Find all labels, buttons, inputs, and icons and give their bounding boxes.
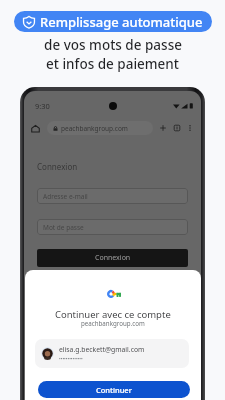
button[interactable]: New tab bbox=[159, 124, 167, 132]
staticText: Connexion bbox=[95, 253, 131, 263]
button[interactable]: Adresse e-mail bbox=[37, 188, 188, 204]
staticText: peachbankgroup.com bbox=[81, 319, 145, 327]
staticText: Continuer bbox=[96, 385, 132, 395]
other: Shield bbox=[22, 15, 36, 29]
button[interactable]: Connexion bbox=[37, 249, 188, 267]
staticText: 9:30 bbox=[35, 101, 50, 111]
staticText: de vos mots de passe bbox=[44, 36, 182, 54]
button[interactable]: Continuer bbox=[38, 381, 190, 398]
other: Password key bbox=[107, 290, 121, 298]
button[interactable]: peachbankgroup.com bbox=[47, 121, 153, 135]
staticText: Mot de passe bbox=[43, 223, 84, 232]
staticText: Connexion bbox=[37, 161, 78, 172]
staticText: Adresse e-mail bbox=[43, 192, 88, 201]
staticText: •••••••••••••• bbox=[59, 356, 83, 362]
staticText: et infos de paiement bbox=[46, 55, 179, 73]
button[interactable]: More options bbox=[186, 124, 194, 132]
button[interactable]: Mot de passe bbox=[37, 219, 188, 235]
other: Home bbox=[31, 124, 40, 133]
button[interactable]: Shield bbox=[14, 11, 212, 32]
button[interactable]: Tabs bbox=[173, 124, 181, 132]
staticText: Continuer avec ce compte bbox=[55, 308, 171, 321]
staticText: peachbankgroup.com bbox=[61, 124, 128, 133]
button[interactable]: elisa.g.beckett@gmail.com bbox=[35, 339, 189, 368]
staticText: Remplissage automatique bbox=[40, 13, 203, 31]
staticText: elisa.g.beckett@gmail.com bbox=[59, 345, 145, 354]
